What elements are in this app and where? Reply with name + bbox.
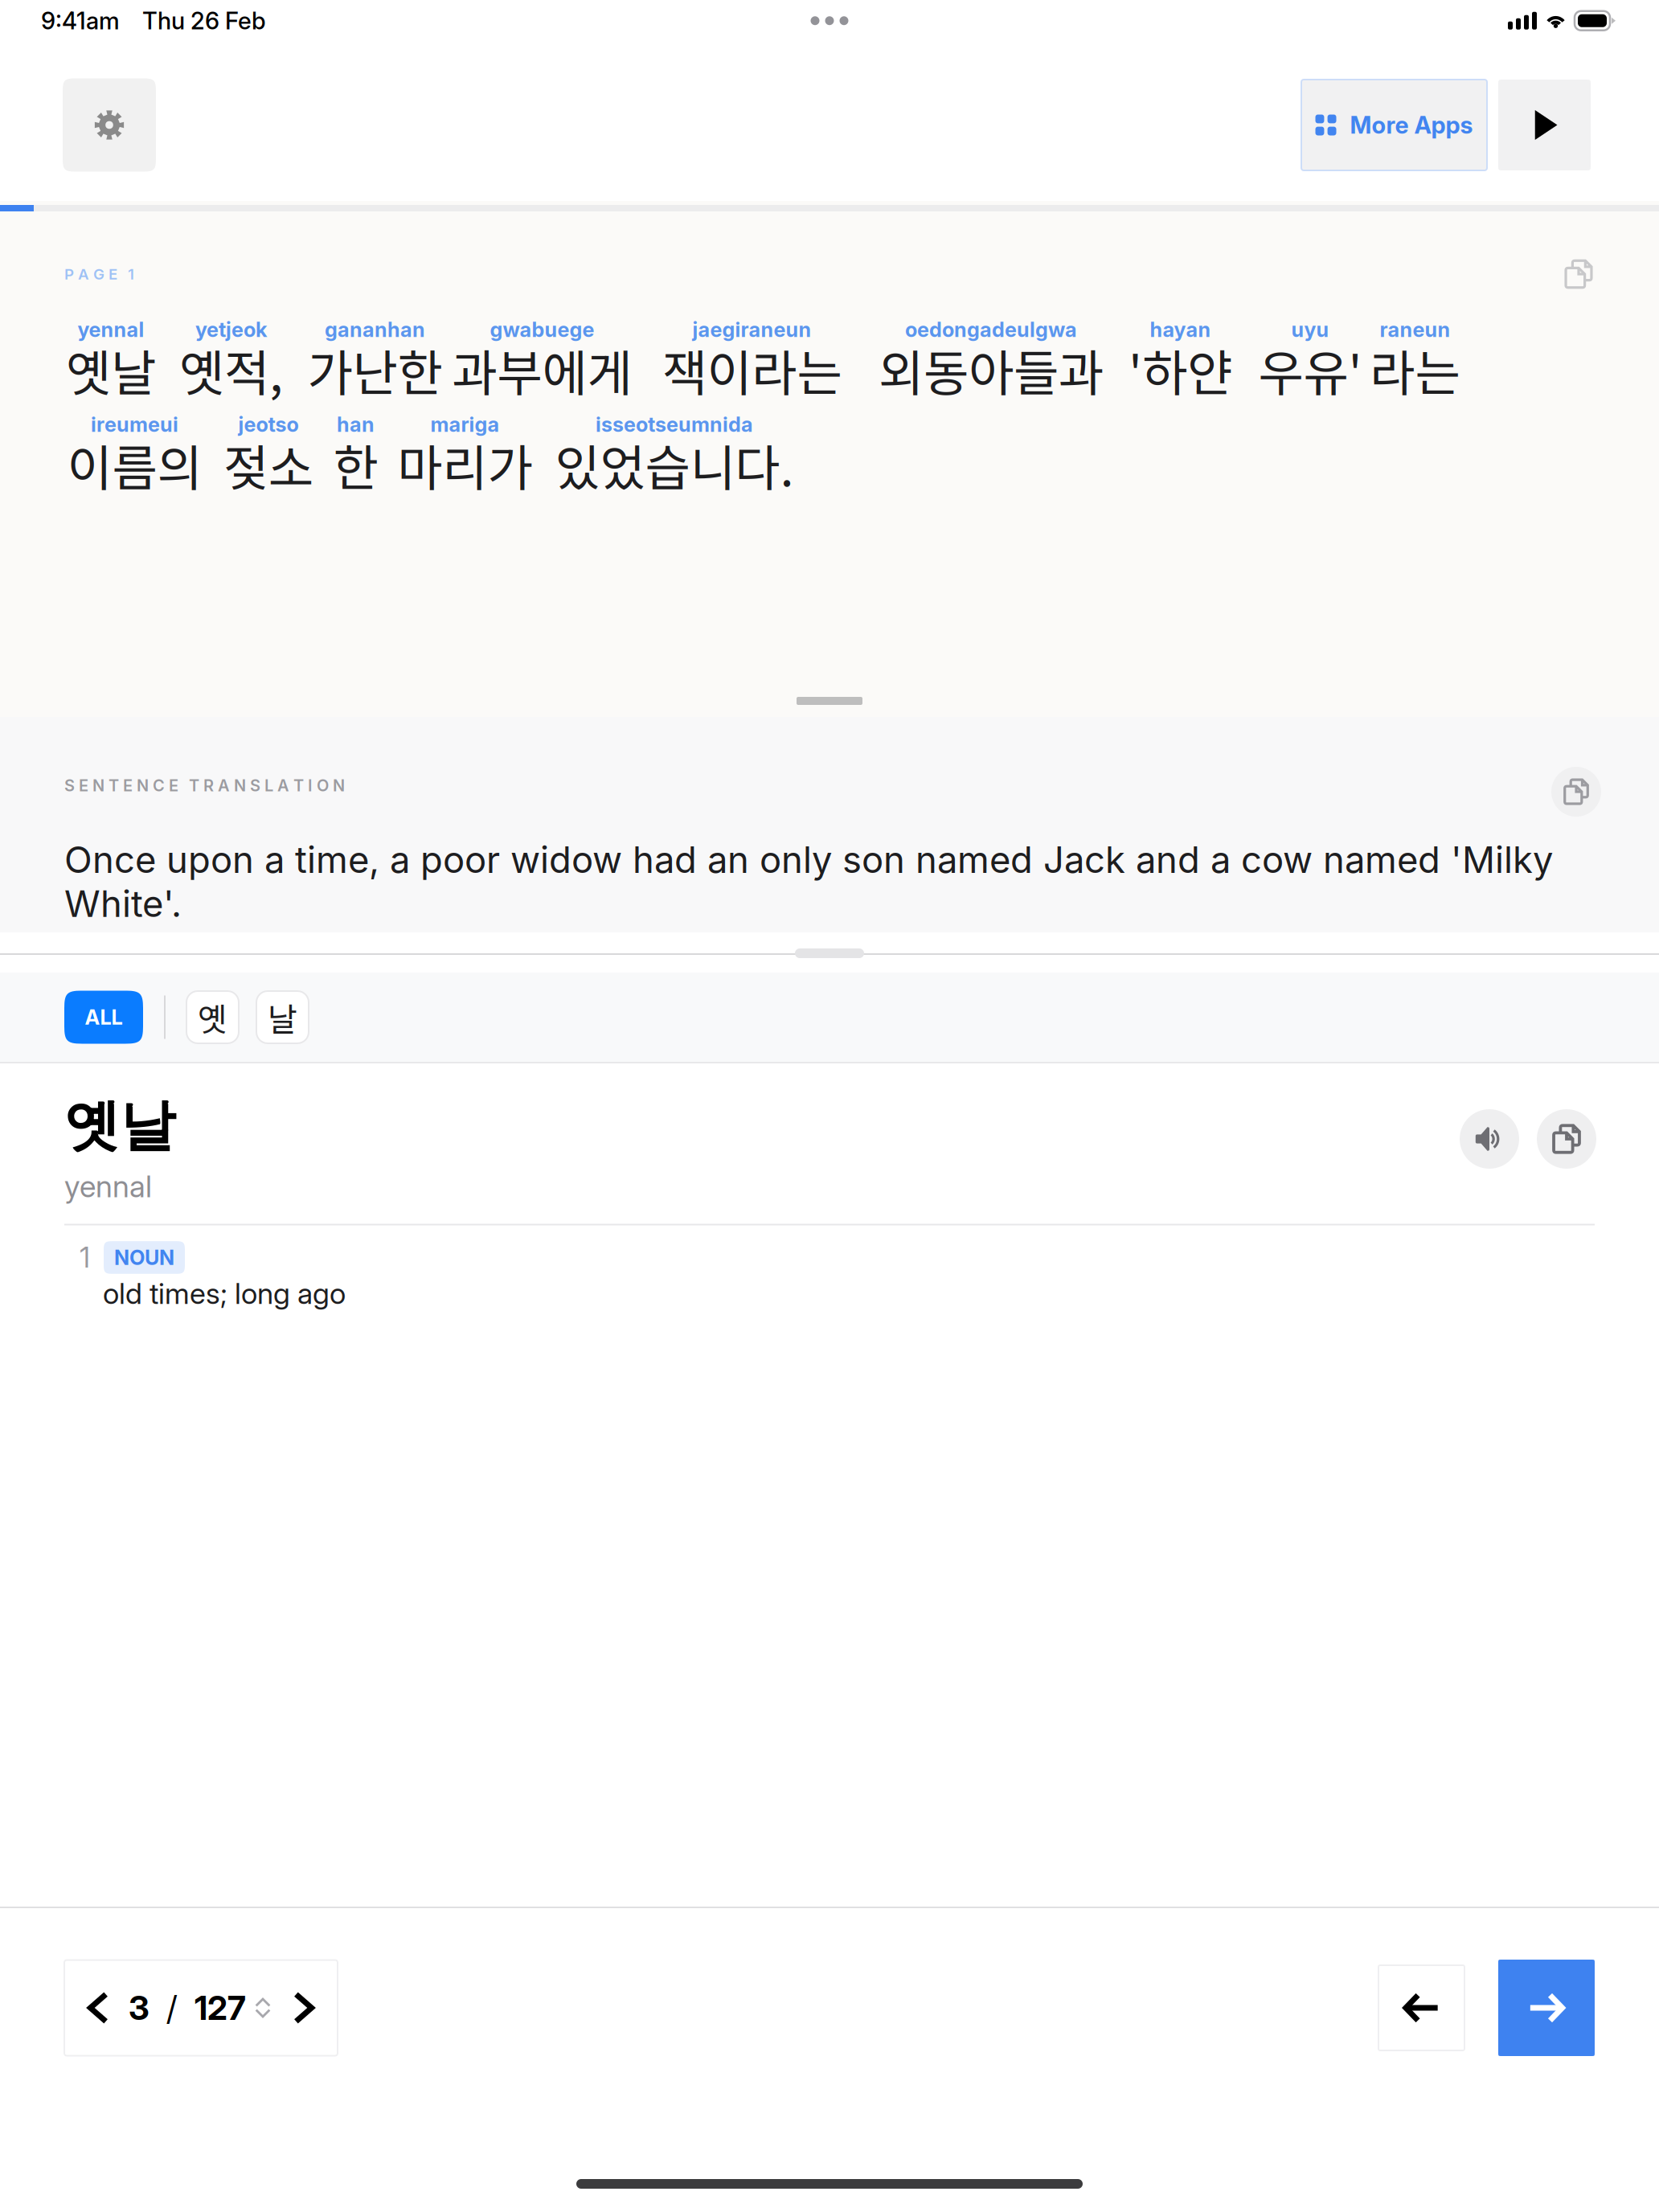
staticText: 외동아들과: [879, 334, 1104, 405]
button[interactable]: More Apps: [1301, 80, 1487, 170]
staticText: yennal: [78, 317, 144, 342]
staticText: 잭이라는: [662, 334, 842, 405]
staticText: old times; long ago: [103, 1276, 346, 1311]
staticText: yetjeok: [195, 317, 267, 342]
staticText: yennal: [64, 1168, 152, 1204]
staticText: 과부에게: [452, 334, 632, 405]
button[interactable]: 옛: [186, 991, 239, 1043]
staticText: gwabuege: [490, 317, 594, 342]
staticText: 옛날: [64, 1091, 175, 1161]
staticText: 옛날: [66, 334, 156, 405]
staticText: gananhan: [325, 317, 425, 342]
staticText: 한: [333, 429, 378, 500]
staticText: NOUN: [114, 1245, 174, 1270]
staticText: oedongadeulgwa: [905, 317, 1077, 342]
staticText: jaegiraneun: [692, 317, 811, 342]
staticText: /: [166, 1988, 178, 2028]
button[interactable]: Play: [1498, 80, 1591, 170]
button[interactable]: 3: [64, 1960, 338, 2056]
staticText: ALL: [85, 1005, 123, 1030]
staticText: '하얀: [1129, 334, 1232, 405]
staticText: More Apps: [1350, 111, 1473, 139]
button[interactable]: Previous: [1378, 1965, 1464, 2050]
staticText: jeotso: [238, 412, 299, 437]
staticText: isseotseumnida: [596, 412, 753, 437]
staticText: 9:41am: [41, 6, 120, 35]
staticText: mariga: [430, 412, 500, 437]
button[interactable]: Copy sentence: [1556, 252, 1601, 297]
staticText: 우유': [1258, 334, 1362, 405]
staticText: hayan: [1150, 317, 1211, 342]
button[interactable]: ALL: [64, 991, 143, 1044]
button[interactable]: Play pronunciation: [1460, 1109, 1519, 1169]
staticText: S E N T E N C E T R A N S L A T I O N: [64, 776, 345, 795]
staticText: P A G E 1: [64, 265, 134, 283]
staticText: Once upon a time, a poor widow had an on…: [64, 838, 1553, 926]
staticText: 3: [129, 1988, 150, 2028]
staticText: 옛적,: [179, 334, 283, 405]
staticText: 마리가: [397, 429, 533, 500]
staticText: 1: [80, 1241, 90, 1274]
staticText: 가난한: [307, 334, 442, 405]
staticText: 라는: [1370, 334, 1460, 405]
staticText: Thu 26 Feb: [142, 6, 266, 35]
staticText: 날: [268, 994, 297, 1040]
button[interactable]: 날: [256, 991, 309, 1043]
staticText: 옛: [198, 994, 227, 1040]
button[interactable]: Next: [1498, 1960, 1595, 2056]
staticText: ireumeui: [91, 412, 178, 437]
staticText: han: [337, 412, 375, 437]
staticText: 127: [195, 1988, 246, 2028]
staticText: raneun: [1380, 317, 1450, 342]
staticText: 젖소: [223, 429, 313, 500]
button[interactable]: Settings: [63, 78, 156, 172]
staticText: 있었습니다.: [555, 429, 794, 500]
button[interactable]: Copy translation: [1551, 767, 1601, 817]
staticText: 이름의: [67, 429, 202, 500]
staticText: uyu: [1291, 317, 1329, 342]
button[interactable]: Copy word: [1537, 1109, 1596, 1169]
